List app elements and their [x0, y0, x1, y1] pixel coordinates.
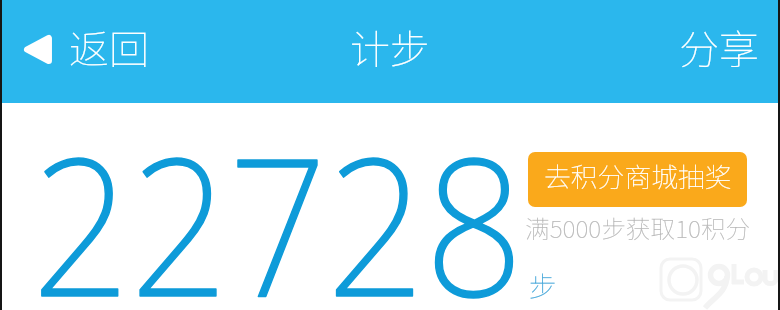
- button[interactable]: 去积分商城抽奖: [528, 152, 747, 207]
- staticText: 满5000步获取10积分: [525, 209, 751, 245]
- staticText: 去积分商城抽奖: [544, 156, 732, 195]
- staticText: 22728: [32, 92, 524, 310]
- staticText: 22728: [32, 92, 524, 310]
- staticText: 计步: [350, 18, 430, 76]
- button[interactable]: Back: [16, 8, 157, 86]
- other: Back: [24, 35, 51, 64]
- staticText: 步: [529, 265, 558, 306]
- staticText: 返回: [69, 18, 149, 76]
- staticText: 分享: [679, 18, 759, 76]
- button[interactable]: 分享: [669, 8, 769, 86]
